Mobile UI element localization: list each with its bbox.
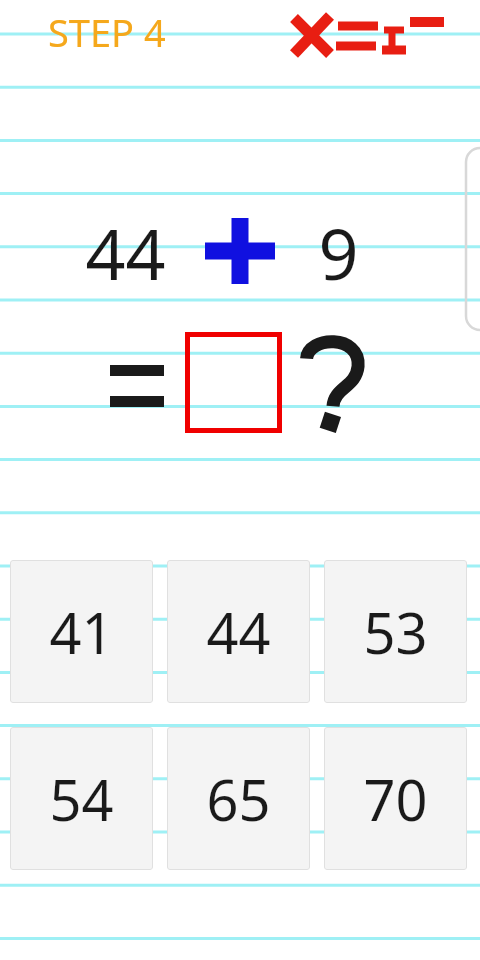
button[interactable]: 54 [10, 727, 153, 870]
button[interactable]: Answer box [185, 332, 282, 433]
button[interactable]: 65 [167, 727, 310, 870]
staticText: 54 [49, 761, 114, 837]
staticText: 70 [363, 761, 428, 837]
button[interactable]: 70 [324, 727, 467, 870]
staticText: 44 [85, 205, 166, 295]
staticText: STEP 4 [48, 6, 166, 58]
staticText: 41 [49, 594, 114, 670]
staticText: 9 [318, 205, 359, 295]
button[interactable]: 41 [10, 560, 153, 703]
button[interactable]: 53 [324, 560, 467, 703]
staticText: 53 [363, 594, 428, 670]
staticText: 65 [206, 761, 271, 837]
button[interactable]: Menu [288, 8, 438, 56]
button[interactable]: STEP 4 [48, 6, 166, 58]
staticText: 44 [206, 594, 271, 670]
button[interactable]: 44 [167, 560, 310, 703]
